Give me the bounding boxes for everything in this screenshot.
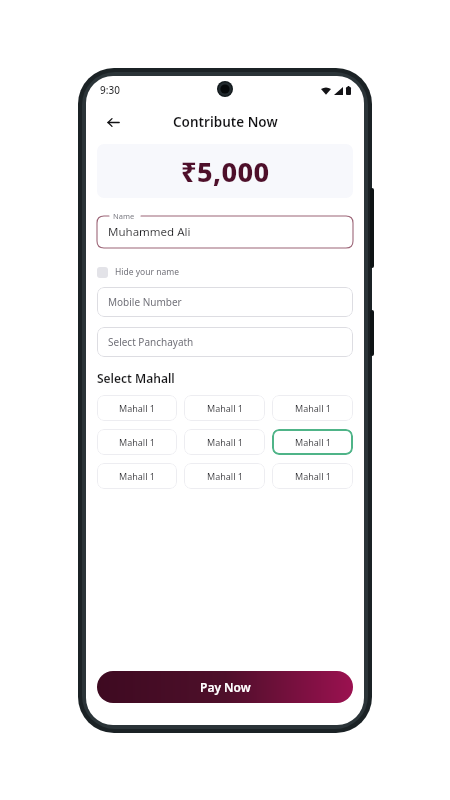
staticText: Mahall 1: [295, 470, 331, 482]
staticText: Mahall 1: [295, 436, 331, 448]
button[interactable]: Back: [100, 109, 126, 135]
staticText: Contribute Now: [173, 113, 278, 131]
button[interactable]: Mahall 1: [272, 463, 353, 489]
staticText: Muhammed Ali: [108, 224, 191, 240]
button[interactable]: Mahall 1: [272, 395, 353, 421]
button[interactable]: Mahall 1: [97, 429, 177, 455]
button[interactable]: Select Panchayath: [97, 327, 353, 357]
staticText: Mahall 1: [207, 470, 243, 482]
button[interactable]: Mahall 1: [97, 463, 177, 489]
staticText: Pay Now: [200, 679, 251, 695]
button[interactable]: Mahall 1: [184, 395, 265, 421]
button[interactable]: Mahall 1: [272, 429, 353, 455]
staticText: Mobile Number: [108, 295, 182, 309]
staticText: 9:30: [100, 83, 120, 97]
staticText: Select Panchayath: [108, 335, 194, 349]
staticText: Name: [113, 211, 135, 221]
staticText: Mahall 1: [207, 436, 243, 448]
staticText: Mahall 1: [119, 470, 155, 482]
button[interactable]: Mahall 1: [97, 395, 177, 421]
staticText: Mahall 1: [119, 436, 155, 448]
button[interactable]: Mobile Number: [97, 287, 353, 317]
button[interactable]: Mahall 1: [184, 463, 265, 489]
button[interactable]: Mahall 1: [184, 429, 265, 455]
staticText: Mahall 1: [295, 402, 331, 414]
staticText: Mahall 1: [119, 402, 155, 414]
staticText: Hide your name: [115, 266, 179, 278]
staticText: Mahall 1: [207, 402, 243, 414]
button[interactable]: Hide your name: [97, 266, 179, 278]
staticText: Select Mahall: [97, 370, 175, 386]
staticText: ₹5,000: [181, 153, 270, 190]
button[interactable]: Pay Now: [97, 671, 353, 703]
